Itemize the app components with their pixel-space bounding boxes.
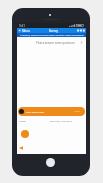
button[interactable]: very phon label [18,107,85,116]
staticText: ready [74,110,81,113]
button[interactable]: Back [19,146,23,150]
staticText: Lorem [19,120,26,123]
staticText: very phon label [26,110,45,113]
staticText: Nunavut, Dakota of Community Housing Sha… [20,34,84,37]
staticText: Menu [22,29,30,33]
staticText: Survey [49,29,59,33]
staticText: 9:41 [19,24,25,28]
button[interactable]: More options [77,28,84,33]
staticText: phil profi , phil druck [50,120,73,123]
button[interactable]: Home [46,158,55,167]
button[interactable]: Please answer some questions [17,37,86,48]
button[interactable]: Profile [21,130,29,138]
button[interactable]: Back [18,28,30,33]
staticText: Please answer some questions [36,41,75,45]
